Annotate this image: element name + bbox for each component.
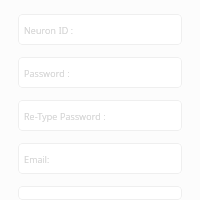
button[interactable]: Neuron ID : — [18, 14, 182, 45]
button[interactable] — [18, 186, 182, 200]
staticText: Password : — [24, 67, 70, 79]
button[interactable]: Re-Type Password : — [18, 100, 182, 131]
staticText: Email: — [24, 153, 50, 165]
staticText: Neuron ID : — [24, 24, 74, 36]
button[interactable]: Password : — [18, 57, 182, 88]
staticText: Re-Type Password : — [24, 110, 106, 122]
button[interactable]: Email: — [18, 143, 182, 174]
